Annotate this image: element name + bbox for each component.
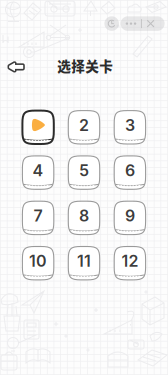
- button[interactable]: 12: [114, 246, 146, 280]
- button[interactable]: 8: [68, 201, 100, 235]
- button[interactable]: More: [121, 16, 165, 31]
- staticText: 9: [125, 206, 135, 225]
- button[interactable]: 11: [68, 246, 100, 280]
- button[interactable]: Location: [104, 16, 119, 31]
- button[interactable]: 3: [114, 111, 146, 144]
- staticText: 4: [33, 161, 44, 180]
- button[interactable]: Back: [1, 54, 31, 80]
- button[interactable]: [22, 111, 54, 144]
- staticText: 11: [77, 251, 91, 271]
- button[interactable]: 4: [22, 156, 54, 189]
- button[interactable]: 10: [22, 246, 54, 280]
- staticText: 10: [29, 251, 47, 271]
- button[interactable]: 5: [68, 156, 100, 189]
- staticText: 12: [121, 251, 138, 271]
- staticText: 选择关卡: [57, 56, 113, 75]
- button[interactable]: 2: [68, 111, 100, 144]
- staticText: 8: [79, 206, 89, 225]
- button[interactable]: 7: [22, 201, 54, 235]
- button[interactable]: 6: [114, 156, 146, 189]
- staticText: 2: [79, 115, 89, 135]
- button[interactable]: 9: [114, 201, 146, 235]
- staticText: 3: [125, 115, 135, 135]
- staticText: 5: [79, 161, 89, 180]
- staticText: 6: [125, 161, 135, 180]
- staticText: 7: [34, 206, 43, 225]
